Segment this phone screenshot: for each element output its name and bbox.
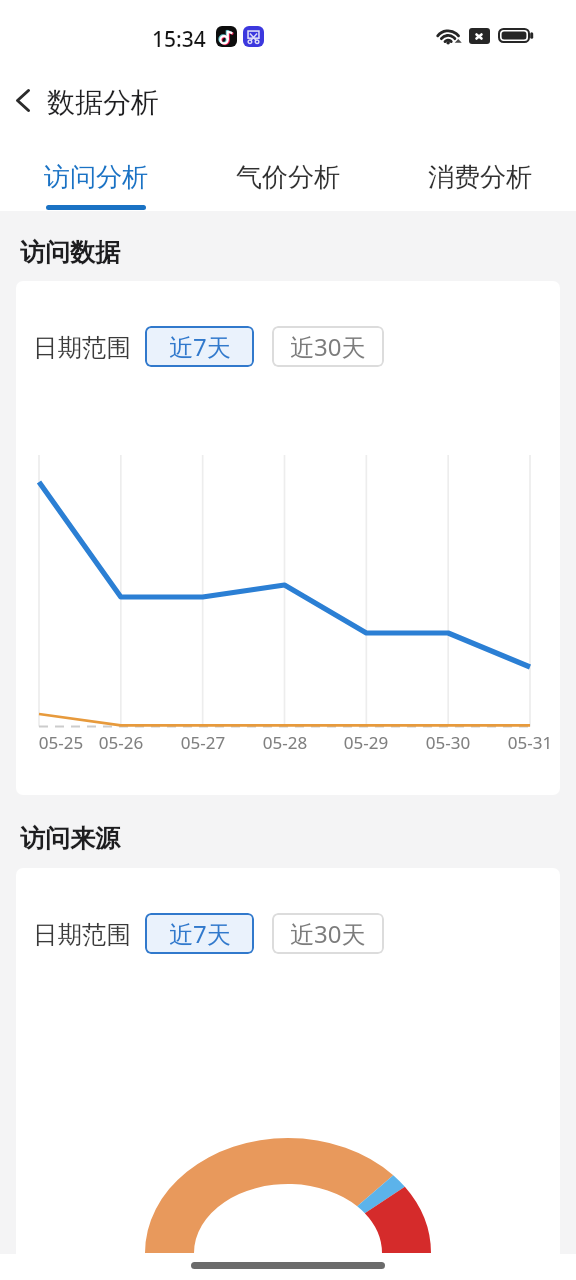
staticText: 数据分析 [47,85,159,120]
staticText: 消费分析 [384,161,576,194]
staticText: 访问来源 [20,823,120,854]
staticText: 05-31 [490,731,570,754]
button[interactable]: 近7天 [145,913,254,954]
staticText: 近30天 [290,330,366,363]
staticText: 气价分析 [192,161,384,194]
staticText: 近7天 [169,330,231,363]
staticText: 日期范围 [33,332,131,363]
staticText: 访问数据 [20,237,120,268]
button[interactable]: 近30天 [272,913,384,954]
button[interactable]: Back [0,76,48,124]
button[interactable]: 近30天 [272,326,384,367]
staticText: 05-26 [81,731,161,754]
staticText: 05-28 [245,731,325,754]
staticText: 访问分析 [0,161,192,194]
staticText: 05-27 [163,731,243,754]
button[interactable]: 消费分析 [384,140,576,211]
other: Wi-Fi [438,27,460,44]
staticText: 日期范围 [33,919,131,950]
staticText: 近30天 [290,917,366,950]
button[interactable]: 气价分析 [192,140,384,211]
staticText: 05-30 [408,731,488,754]
staticText: 05-29 [326,731,406,754]
staticText: 15:34 [152,25,206,54]
button[interactable]: 近7天 [145,326,254,367]
button[interactable]: 访问分析 [0,140,192,211]
other: Battery [498,28,534,43]
staticText: 05-25 [21,731,101,754]
staticText: 近7天 [169,917,231,950]
